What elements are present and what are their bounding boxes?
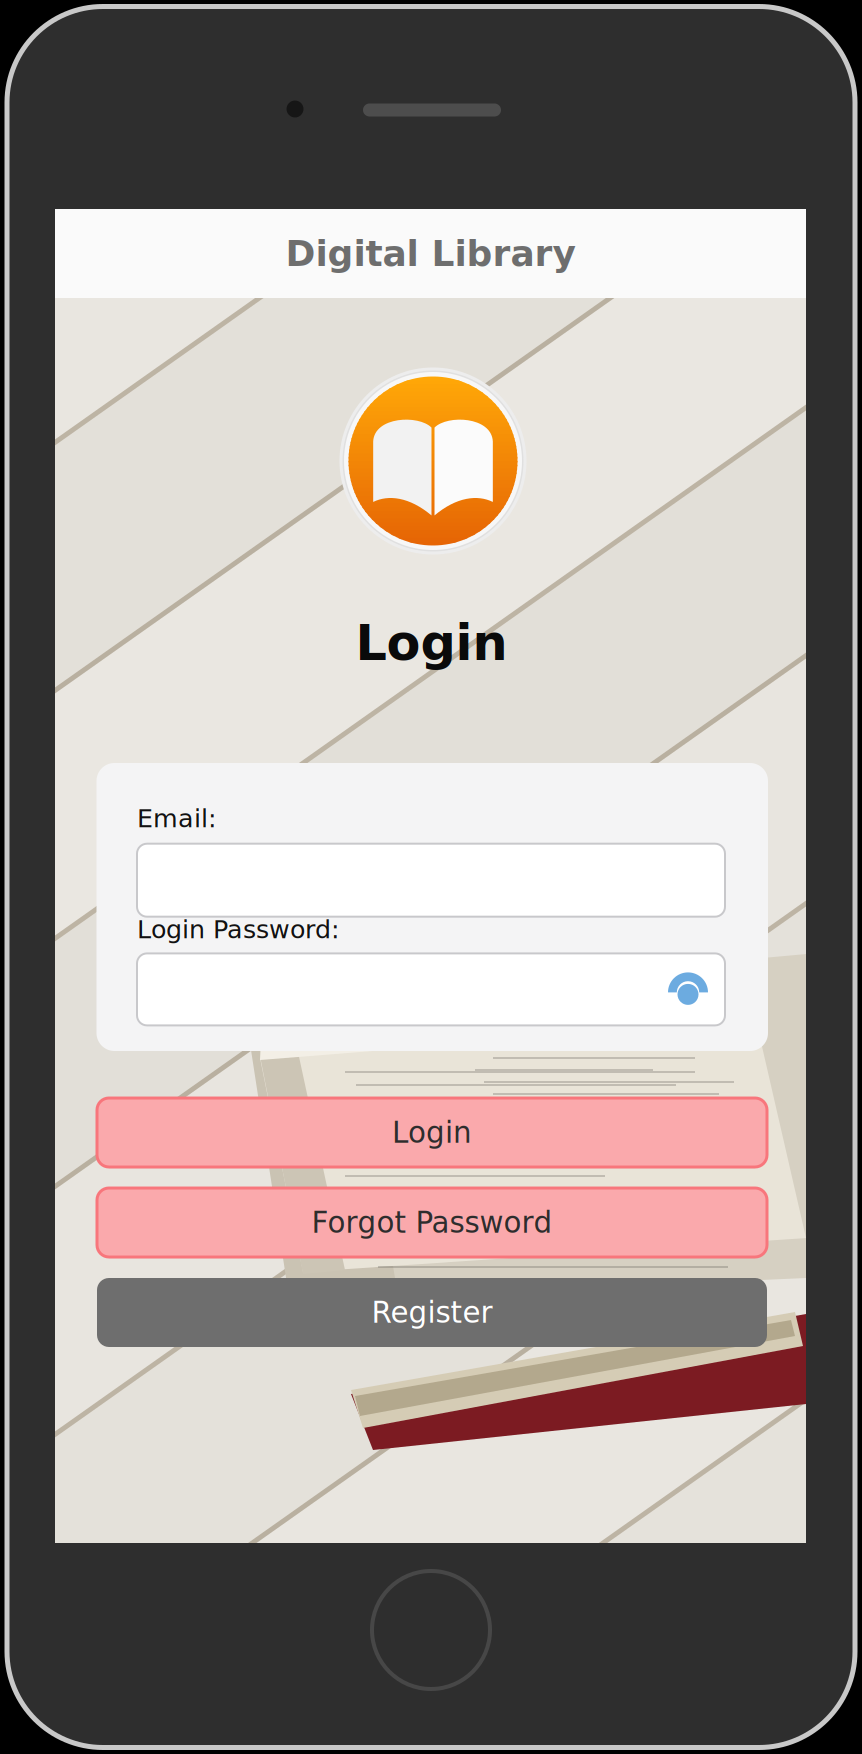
button[interactable]: Forgot Password: [97, 1188, 767, 1257]
staticText: Digital Library: [285, 232, 575, 274]
staticText: Register: [371, 1295, 492, 1329]
staticText: Login Password:: [137, 915, 340, 944]
staticText: Forgot Password: [311, 1205, 552, 1239]
staticText: Email:: [137, 804, 217, 833]
staticText: Login: [392, 1115, 472, 1149]
button[interactable]: Show password: [667, 970, 725, 1008]
button[interactable]: Register: [97, 1278, 767, 1347]
staticText: Login: [355, 614, 507, 672]
button[interactable]: Login: [97, 1098, 767, 1167]
